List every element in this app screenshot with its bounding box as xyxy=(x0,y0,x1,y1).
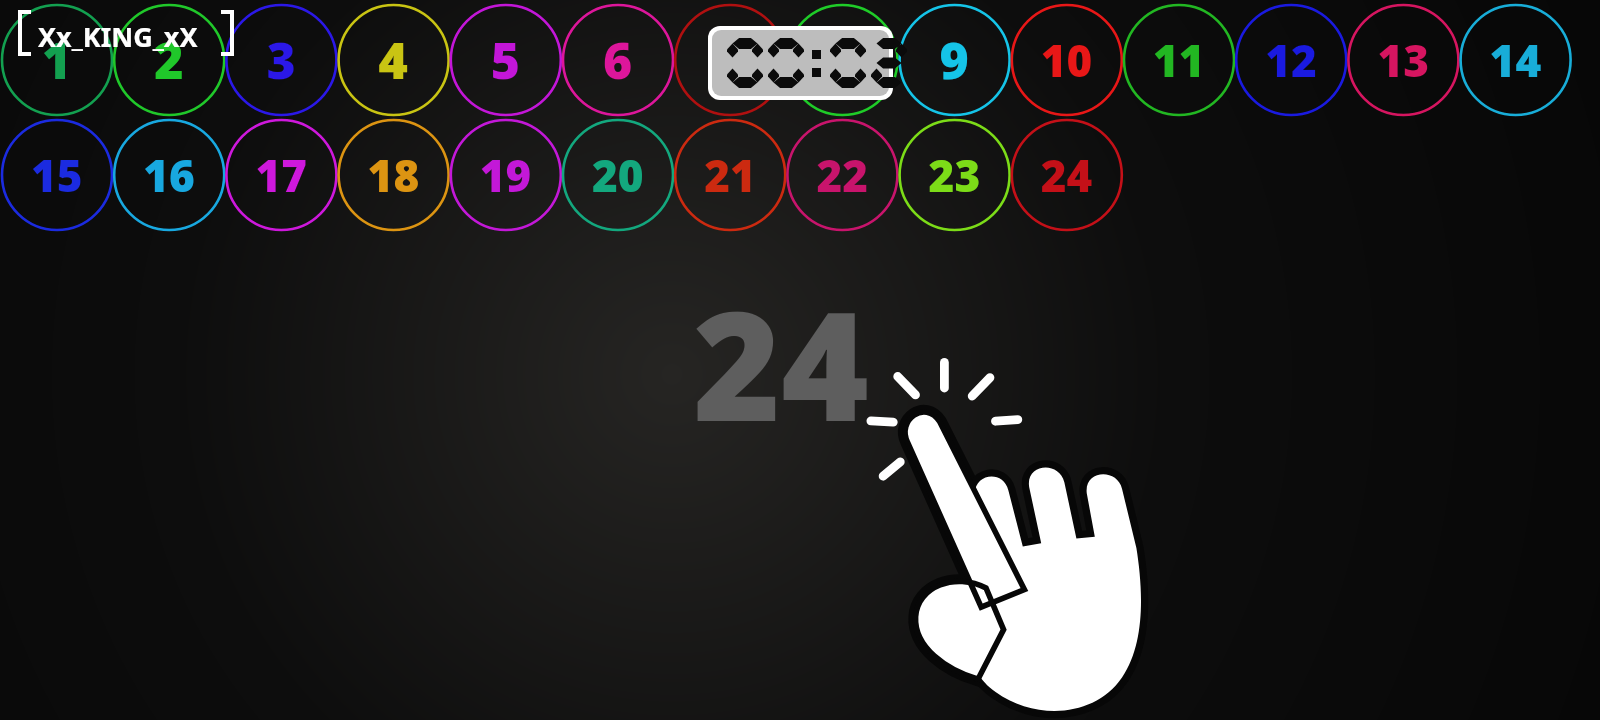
button[interactable]: Number tap game board xyxy=(0,0,1600,720)
